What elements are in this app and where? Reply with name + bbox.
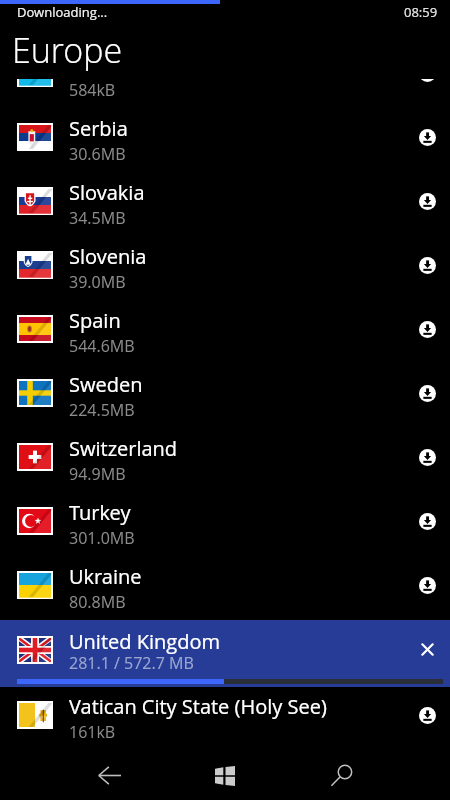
- staticText: 80.8MB: [69, 591, 126, 613]
- button[interactable]: Sweden: [0, 361, 450, 425]
- button[interactable]: Download Spain: [404, 306, 450, 352]
- staticText: 301.0MB: [69, 527, 135, 549]
- staticText: Ukraine: [69, 563, 142, 590]
- button[interactable]: Cancel download: [404, 626, 450, 672]
- staticText: 08:59: [404, 3, 438, 21]
- button[interactable]: Spain: [0, 297, 450, 361]
- staticText: 161kB: [69, 721, 116, 743]
- staticText: 544.6MB: [69, 335, 135, 357]
- staticText: Serbia: [69, 115, 128, 142]
- button[interactable]: Download Sweden: [404, 370, 450, 416]
- staticText: Downloading...: [17, 3, 108, 21]
- button[interactable]: Slovenia: [0, 233, 450, 297]
- button[interactable]: Download San Marino: [404, 79, 450, 96]
- button[interactable]: United Kingdom: [0, 617, 450, 683]
- staticText: 30.6MB: [69, 143, 126, 165]
- staticText: Slovakia: [69, 179, 145, 206]
- staticText: Slovenia: [69, 243, 147, 270]
- button[interactable]: Turkey: [0, 489, 450, 553]
- staticText: Switzerland: [69, 435, 178, 462]
- staticText: United Kingdom: [69, 628, 221, 655]
- button[interactable]: Switzerland: [0, 425, 450, 489]
- button[interactable]: Ukraine: [0, 553, 450, 617]
- button[interactable]: Download Ukraine: [404, 562, 450, 608]
- staticText: 281.1 / 572.7 MB: [69, 652, 194, 674]
- staticText: Spain: [69, 307, 121, 334]
- button[interactable]: Download Slovenia: [404, 242, 450, 288]
- staticText: 224.5MB: [69, 399, 135, 421]
- button[interactable]: Download Turkey: [404, 498, 450, 544]
- button[interactable]: Slovakia: [0, 169, 450, 233]
- staticText: Sweden: [69, 371, 143, 398]
- staticText: Europe: [12, 27, 123, 73]
- staticText: 584kB: [69, 79, 116, 101]
- button[interactable]: Start: [195, 749, 255, 800]
- button[interactable]: Vatican City State (Holy See): [0, 683, 450, 747]
- button[interactable]: Download Serbia: [404, 114, 450, 160]
- button[interactable]: Search: [311, 749, 371, 800]
- staticText: 39.0MB: [69, 271, 126, 293]
- staticText: Turkey: [69, 499, 131, 526]
- button[interactable]: Download Switzerland: [404, 434, 450, 480]
- staticText: Vatican City State (Holy See): [69, 693, 327, 720]
- button[interactable]: Serbia: [0, 105, 450, 169]
- button[interactable]: Download Slovakia: [404, 178, 450, 224]
- button[interactable]: Back: [79, 749, 139, 800]
- button[interactable]: Download Vatican City State (Holy See): [404, 692, 450, 738]
- staticText: 34.5MB: [69, 207, 126, 229]
- button[interactable]: San Marino: [0, 79, 450, 105]
- staticText: 94.9MB: [69, 463, 126, 485]
